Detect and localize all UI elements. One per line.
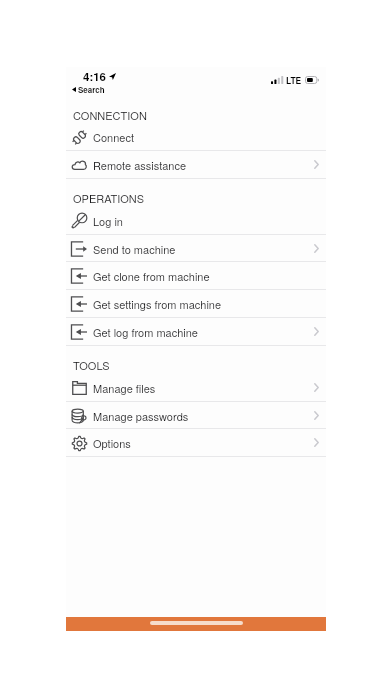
button[interactable]: Send to machine [66,235,326,262]
button[interactable]: Get clone from machine [66,262,326,289]
button[interactable]: Manage passwords [66,402,326,429]
staticText: Search [78,84,105,95]
button[interactable]: Get settings from machine [66,290,326,317]
button[interactable]: Search [72,84,105,95]
staticText: Manage passwords [93,408,189,424]
staticText: Send to machine [93,241,176,257]
staticText: Get clone from machine [93,268,210,284]
staticText: Get settings from machine [93,296,222,312]
staticText: CONNECTION [73,107,147,123]
staticText: LTE [286,74,302,86]
button[interactable]: Remote assistance [66,151,326,178]
other: Options [72,436,87,451]
staticText: Connect [93,129,134,145]
button[interactable]: Options [66,429,326,456]
staticText: Remote assistance [93,157,187,173]
staticText: Log in [93,213,123,229]
staticText: TOOLS [73,357,110,373]
button[interactable]: Get log from machine [66,318,326,345]
staticText: Get log from machine [93,324,198,340]
staticText: 4:16 [83,68,107,84]
staticText: OPERATIONS [73,190,145,206]
button[interactable]: Manage files [66,374,326,401]
button[interactable]: Log in [66,207,326,234]
staticText: Options [93,435,131,451]
staticText: Manage files [93,380,156,396]
button[interactable]: Connect [66,123,326,150]
